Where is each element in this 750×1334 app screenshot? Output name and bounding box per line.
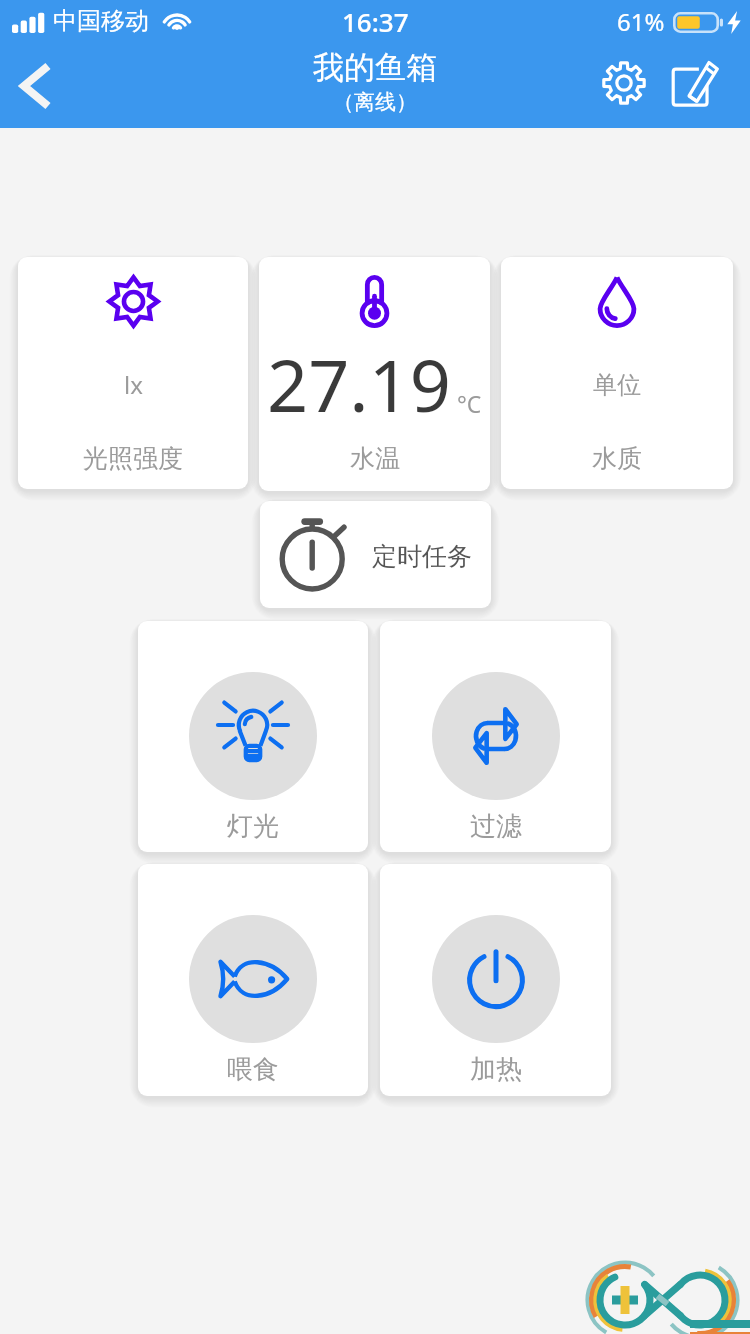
staticText: （离线）: [333, 89, 417, 115]
button[interactable]: 灯光: [138, 621, 368, 852]
staticText: °C: [457, 388, 482, 419]
staticText: 水温: [350, 443, 400, 474]
button[interactable]: Back: [0, 44, 72, 128]
button[interactable]: 过滤: [380, 621, 611, 852]
staticText: 61%: [617, 5, 665, 38]
staticText: 过滤: [470, 810, 522, 843]
staticText: 中国移动: [53, 6, 149, 36]
staticText: lx: [124, 368, 143, 401]
staticText: 光照强度: [83, 443, 183, 474]
button[interactable]: Settings: [589, 41, 659, 125]
staticText: 27.19: [267, 335, 452, 433]
button[interactable]: 单位: [501, 257, 733, 489]
staticText: 灯光: [227, 810, 279, 843]
staticText: 16:37: [342, 4, 409, 39]
staticText: 单位: [593, 370, 641, 400]
button[interactable]: 喂食: [138, 864, 368, 1096]
staticText: 我的鱼箱: [313, 48, 437, 87]
button[interactable]: 定时任务: [260, 501, 491, 608]
staticText: 喂食: [227, 1053, 279, 1086]
button[interactable]: lx: [18, 257, 248, 489]
button[interactable]: 27.19: [259, 257, 490, 491]
staticText: 水质: [592, 443, 642, 474]
button[interactable]: 加热: [380, 864, 611, 1096]
staticText: 定时任务: [372, 541, 472, 572]
staticText: 加热: [470, 1053, 522, 1086]
button[interactable]: Edit: [661, 41, 731, 125]
